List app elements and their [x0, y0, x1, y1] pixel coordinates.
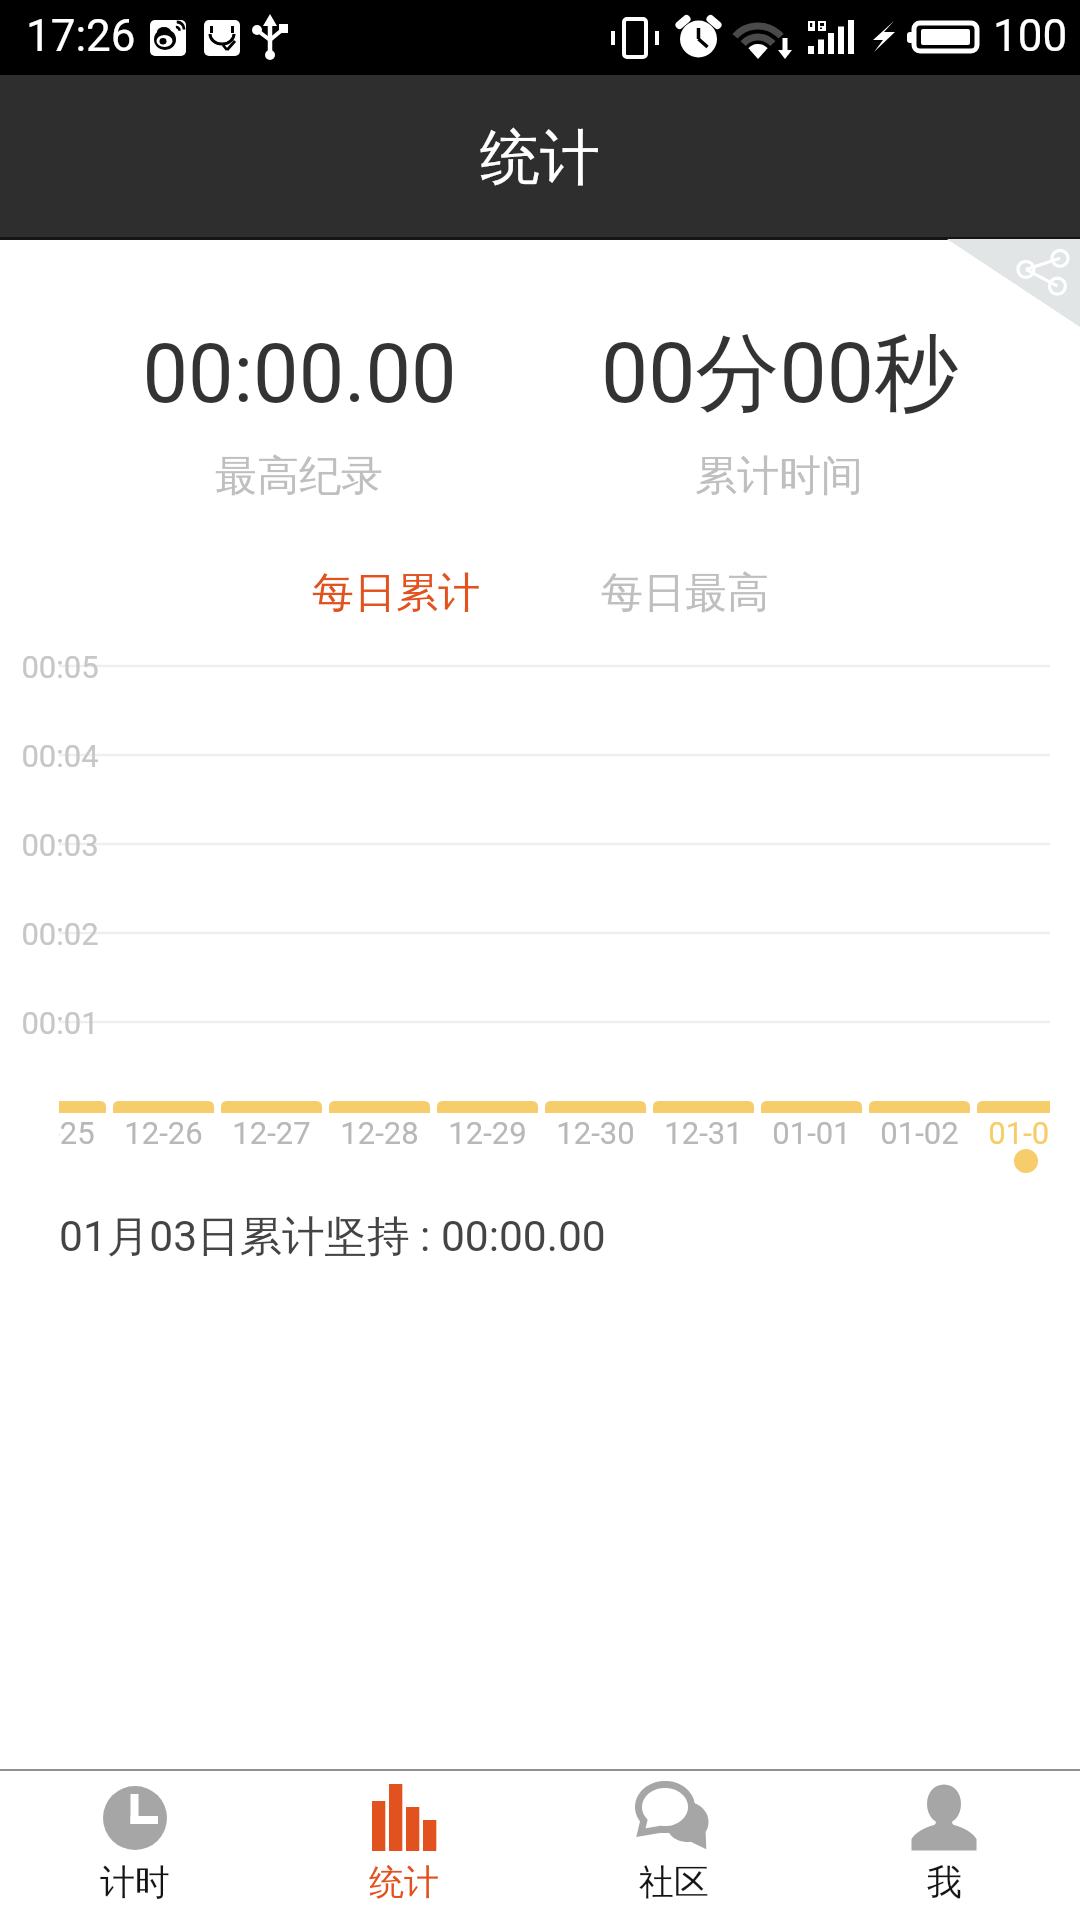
staticText: 每日累计: [312, 567, 480, 620]
button[interactable]: Share: [947, 239, 1080, 327]
staticText: 统计: [480, 120, 600, 196]
staticText: 00:04: [21, 738, 99, 774]
staticText: 17:26: [26, 10, 136, 62]
staticText: 计时: [100, 1860, 170, 1904]
button[interactable]: 统计: [269, 1772, 539, 1920]
staticText: 100: [993, 10, 1068, 62]
staticText: 12-29: [448, 1115, 527, 1151]
staticText: 01-02: [880, 1115, 959, 1151]
button[interactable]: 社区: [539, 1772, 809, 1920]
staticText: 01-01: [772, 1115, 851, 1151]
staticText: 00分00秒: [601, 321, 958, 427]
staticText: 每日最高: [601, 567, 769, 620]
staticText: 我: [927, 1860, 962, 1904]
staticText: 社区: [639, 1860, 709, 1904]
staticText: 12-30: [556, 1115, 635, 1151]
staticText: 12-31: [664, 1115, 743, 1151]
staticText: 12-27: [232, 1115, 311, 1151]
button[interactable]: 我: [809, 1772, 1079, 1920]
staticText: 最高纪录: [215, 450, 383, 503]
staticText: 00:05: [21, 649, 99, 685]
staticText: 12-28: [340, 1115, 419, 1151]
staticText: 01-03: [988, 1115, 1050, 1151]
staticText: 00:02: [21, 916, 99, 952]
staticText: 12-26: [124, 1115, 203, 1151]
staticText: 00:01: [21, 1005, 99, 1041]
staticText: 01月03日累计坚持 : 00:00.00: [59, 1210, 606, 1264]
staticText: 12-25: [59, 1115, 95, 1151]
button[interactable]: 每日最高: [557, 547, 813, 639]
staticText: 00:03: [21, 827, 99, 863]
staticText: 统计: [369, 1860, 439, 1904]
staticText: 累计时间: [695, 450, 863, 503]
button[interactable]: 每日累计: [268, 547, 524, 639]
staticText: 00:00.00: [142, 327, 457, 422]
button[interactable]: 计时: [0, 1772, 270, 1920]
